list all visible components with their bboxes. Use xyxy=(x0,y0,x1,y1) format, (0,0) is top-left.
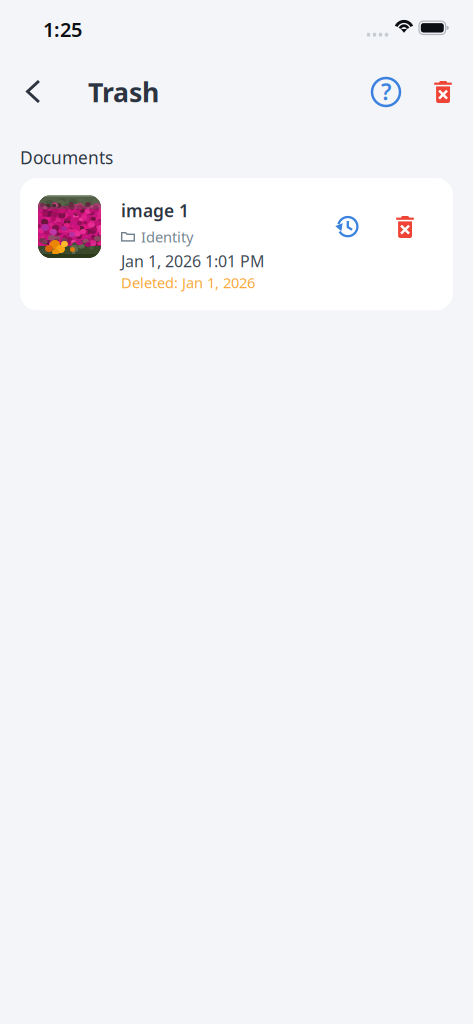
button[interactable]: Empty Trash xyxy=(420,69,466,115)
button[interactable]: Delete permanently xyxy=(386,208,424,246)
button[interactable]: image 1 xyxy=(20,178,453,310)
button[interactable]: Restore xyxy=(328,208,366,246)
staticText: Trash xyxy=(88,74,159,110)
staticText: Identity xyxy=(141,227,193,246)
staticText: image 1 xyxy=(121,199,189,222)
button[interactable]: Trash xyxy=(55,69,167,115)
button[interactable]: Back xyxy=(13,69,55,115)
staticText: Jan 1, 2026 1:01 PM xyxy=(121,250,265,272)
button[interactable]: Help xyxy=(363,69,409,115)
staticText: Documents xyxy=(20,146,113,169)
staticText: 1:25 xyxy=(43,16,82,43)
staticText: Deleted: Jan 1, 2026 xyxy=(121,273,255,292)
staticText: ? xyxy=(381,76,391,106)
